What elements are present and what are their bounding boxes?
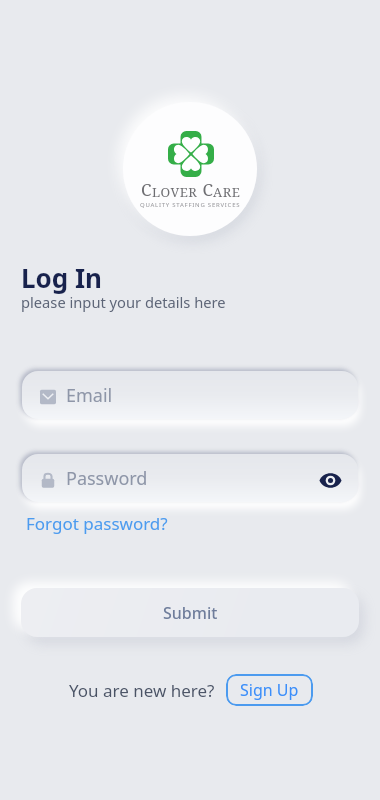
staticText: You are new here? (69, 679, 215, 702)
staticText: please input your details here (21, 292, 226, 312)
button[interactable]: Show password (314, 462, 346, 494)
staticText: Password (66, 466, 148, 491)
staticText: Submit (163, 602, 218, 624)
staticText: ARE (213, 183, 241, 201)
button[interactable]: Forgot password? (22, 511, 168, 536)
staticText: QUALITY STAFFING SERVICES (140, 201, 241, 209)
staticText: Forgot password? (26, 512, 168, 535)
button[interactable]: Sign Up (226, 674, 313, 706)
staticText: C (141, 178, 152, 201)
button[interactable]: Password (22, 454, 358, 502)
staticText: C (198, 178, 213, 201)
staticText: Email (66, 383, 113, 408)
button[interactable]: Submit (21, 588, 359, 637)
staticText: Sign Up (240, 679, 299, 701)
button[interactable]: Email (22, 371, 358, 419)
staticText: Log In (21, 260, 102, 295)
staticText: LOVER (152, 183, 198, 201)
